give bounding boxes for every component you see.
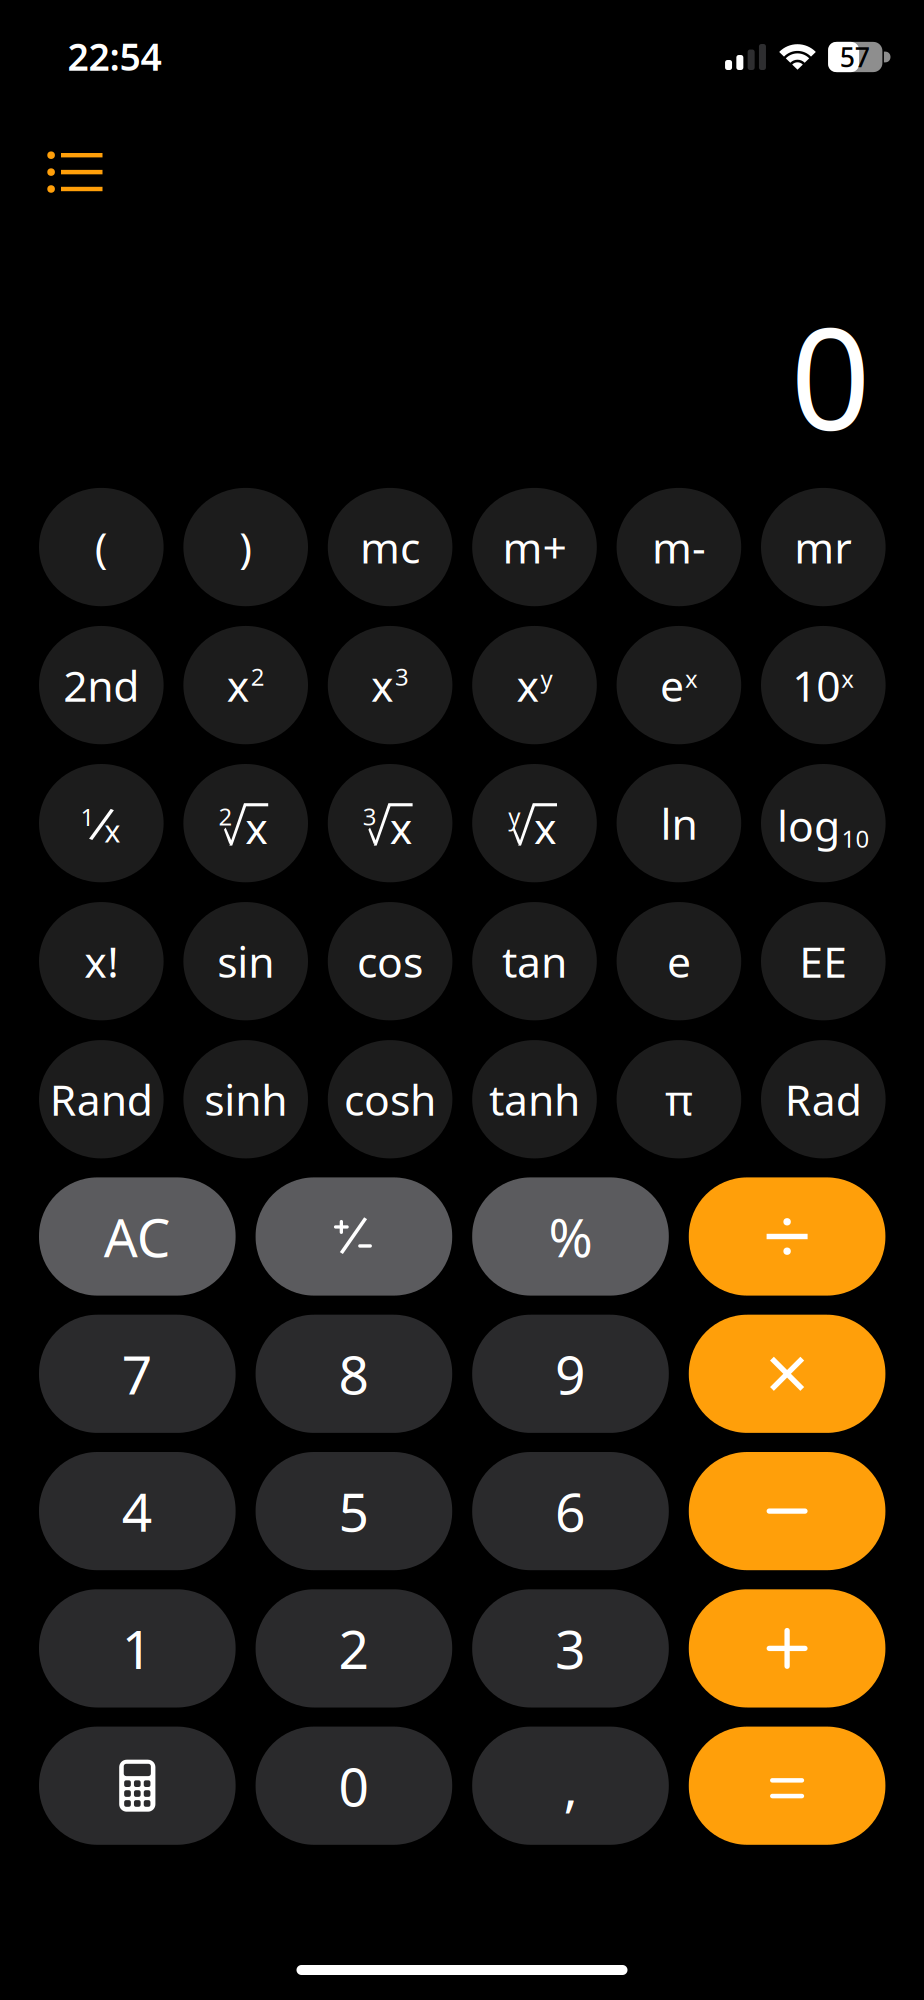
staticText: x! bbox=[84, 933, 118, 990]
button[interactable]: log10 bbox=[761, 764, 886, 882]
button[interactable]: 0 bbox=[256, 1727, 452, 1845]
button[interactable]: ln bbox=[617, 764, 741, 882]
staticText: x bbox=[104, 810, 120, 851]
staticText: 2 bbox=[338, 1613, 369, 1684]
staticText: y bbox=[508, 800, 520, 832]
staticText: x bbox=[371, 657, 394, 713]
button[interactable]: Subtract bbox=[689, 1452, 885, 1570]
staticText: π bbox=[665, 1071, 693, 1128]
button[interactable]: Basic calculator bbox=[39, 1727, 236, 1845]
button[interactable]: 2 root of x bbox=[183, 764, 308, 882]
button[interactable]: 3 root of x bbox=[328, 764, 452, 882]
button[interactable]: One over x bbox=[39, 764, 164, 882]
staticText: log bbox=[777, 797, 840, 853]
button[interactable]: cosh bbox=[328, 1040, 452, 1158]
button[interactable]: x3 bbox=[328, 626, 452, 744]
button[interactable]: 9 bbox=[472, 1315, 669, 1433]
staticText: ) bbox=[239, 519, 252, 575]
button[interactable]: tanh bbox=[472, 1040, 597, 1158]
button[interactable]: Rand bbox=[39, 1040, 164, 1158]
button[interactable]: 1 bbox=[39, 1589, 236, 1707]
staticText: sinh bbox=[204, 1071, 287, 1128]
button[interactable]: 8 bbox=[256, 1315, 452, 1433]
button[interactable]: Add bbox=[689, 1589, 885, 1707]
staticText: ln bbox=[660, 795, 697, 851]
button[interactable]: ) bbox=[183, 488, 308, 606]
staticText: mc bbox=[360, 519, 420, 575]
staticText: 4 bbox=[122, 1476, 153, 1546]
button[interactable]: ex bbox=[617, 626, 741, 744]
staticText: 3 bbox=[395, 660, 409, 692]
button[interactable]: ( bbox=[39, 488, 164, 606]
staticText: y bbox=[540, 662, 552, 694]
staticText: , bbox=[563, 1750, 577, 1821]
button[interactable]: x! bbox=[39, 902, 164, 1020]
staticText: x bbox=[534, 799, 557, 856]
staticText: 2nd bbox=[63, 657, 139, 713]
button[interactable]: e bbox=[617, 902, 741, 1020]
staticText: x bbox=[245, 799, 268, 856]
staticText: 0 bbox=[338, 1750, 369, 1821]
button[interactable]: Equals bbox=[689, 1727, 885, 1845]
button[interactable]: m- bbox=[617, 488, 741, 606]
button[interactable]: Rad bbox=[761, 1040, 886, 1158]
staticText: x bbox=[390, 799, 413, 856]
staticText: Rand bbox=[50, 1071, 153, 1128]
button[interactable]: 3 bbox=[472, 1589, 669, 1707]
staticText: cos bbox=[357, 933, 423, 990]
staticText: 10 bbox=[841, 823, 869, 854]
button[interactable]: m+ bbox=[472, 488, 597, 606]
button[interactable]: tan bbox=[472, 902, 597, 1020]
staticText: 1 bbox=[80, 801, 94, 833]
button[interactable]: cos bbox=[328, 902, 452, 1020]
button[interactable]: sinh bbox=[183, 1040, 308, 1158]
staticText: 3 bbox=[363, 800, 377, 832]
staticText: 22:54 bbox=[67, 31, 161, 81]
staticText: AC bbox=[104, 1201, 171, 1272]
button[interactable]: 6 bbox=[472, 1452, 669, 1570]
button[interactable]: y root of x bbox=[472, 764, 597, 882]
button[interactable]: 2nd bbox=[39, 626, 164, 744]
button[interactable]: % bbox=[472, 1177, 669, 1296]
staticText: cosh bbox=[344, 1071, 436, 1128]
button[interactable]: Multiply bbox=[689, 1315, 885, 1433]
button[interactable]: 5 bbox=[256, 1452, 452, 1570]
button[interactable]: Calculator modes bbox=[33, 139, 116, 209]
staticText: x bbox=[516, 657, 539, 713]
staticText: 9 bbox=[555, 1338, 586, 1409]
staticText: 2 bbox=[218, 800, 232, 832]
staticText: mr bbox=[794, 519, 852, 575]
button[interactable]: , bbox=[472, 1727, 669, 1845]
button[interactable]: 7 bbox=[39, 1315, 236, 1433]
staticText: x bbox=[841, 662, 854, 694]
staticText: tanh bbox=[489, 1071, 580, 1128]
button[interactable]: mr bbox=[761, 488, 886, 606]
staticText: 10 bbox=[792, 657, 840, 713]
staticText: 6 bbox=[555, 1476, 586, 1546]
button[interactable]: 10x bbox=[761, 626, 886, 744]
button[interactable]: x2 bbox=[183, 626, 308, 744]
staticText: 5 bbox=[338, 1476, 369, 1546]
staticText: x bbox=[685, 662, 698, 694]
staticText: e bbox=[660, 657, 684, 713]
button[interactable]: Divide bbox=[689, 1177, 885, 1296]
button[interactable]: sin bbox=[183, 902, 308, 1020]
staticText: ( bbox=[95, 519, 108, 575]
button[interactable]: AC bbox=[39, 1177, 236, 1296]
button[interactable]: mc bbox=[328, 488, 452, 606]
button[interactable]: EE bbox=[761, 902, 886, 1020]
staticText: m+ bbox=[502, 519, 566, 575]
button[interactable]: 4 bbox=[39, 1452, 236, 1570]
staticText: 7 bbox=[122, 1338, 153, 1409]
staticText: e bbox=[667, 933, 691, 990]
staticText: 8 bbox=[338, 1338, 369, 1409]
button[interactable]: xy bbox=[472, 626, 597, 744]
button[interactable]: π bbox=[617, 1040, 741, 1158]
staticText: 2 bbox=[251, 660, 265, 692]
button[interactable]: Plus minus bbox=[256, 1177, 452, 1296]
staticText: sin bbox=[217, 933, 274, 990]
staticText: % bbox=[548, 1201, 592, 1272]
button[interactable]: 2 bbox=[256, 1589, 452, 1707]
staticText: 57 bbox=[840, 39, 870, 75]
staticText: x bbox=[227, 657, 250, 713]
